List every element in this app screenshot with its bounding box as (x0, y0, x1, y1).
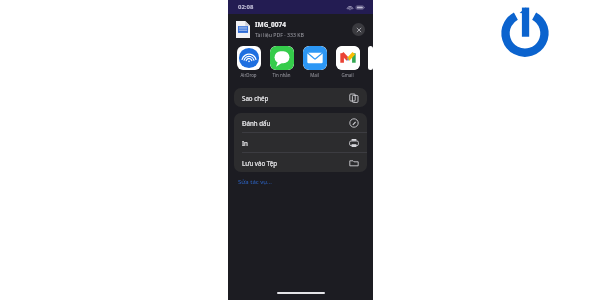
staticText: Sửa tác vụ... (238, 178, 272, 186)
staticText: Gmail (341, 72, 354, 78)
button[interactable]: Đánh dấu (234, 113, 367, 132)
staticText: Mail (310, 72, 319, 78)
button[interactable]: Lưu vào Tệp (234, 153, 367, 172)
staticText: Đánh dấu (242, 119, 349, 127)
button[interactable]: Sao chép (234, 88, 367, 107)
button[interactable]: More apps (368, 46, 373, 70)
button[interactable]: IMG_0074 (236, 20, 365, 38)
staticText: AirDrop (240, 72, 257, 78)
button[interactable]: Mail (302, 46, 327, 78)
staticText: 02:08 (238, 3, 254, 11)
staticText: Tin nhắn (272, 72, 291, 78)
button[interactable]: AirDrop (236, 46, 261, 78)
button[interactable]: Tin nhắn (269, 46, 294, 78)
staticText: In (242, 139, 349, 147)
staticText: IMG_0074 (255, 20, 286, 29)
button[interactable]: In (234, 133, 367, 152)
button[interactable]: Sửa tác vụ... (238, 178, 272, 186)
button[interactable]: Gmail (335, 46, 360, 78)
staticText: Sao chép (242, 94, 349, 102)
staticText: Tài liệu PDF · 333 KB (255, 31, 304, 38)
staticText: Lưu vào Tệp (242, 159, 349, 167)
button[interactable]: Close (352, 23, 365, 36)
other: Logo (498, 3, 552, 57)
